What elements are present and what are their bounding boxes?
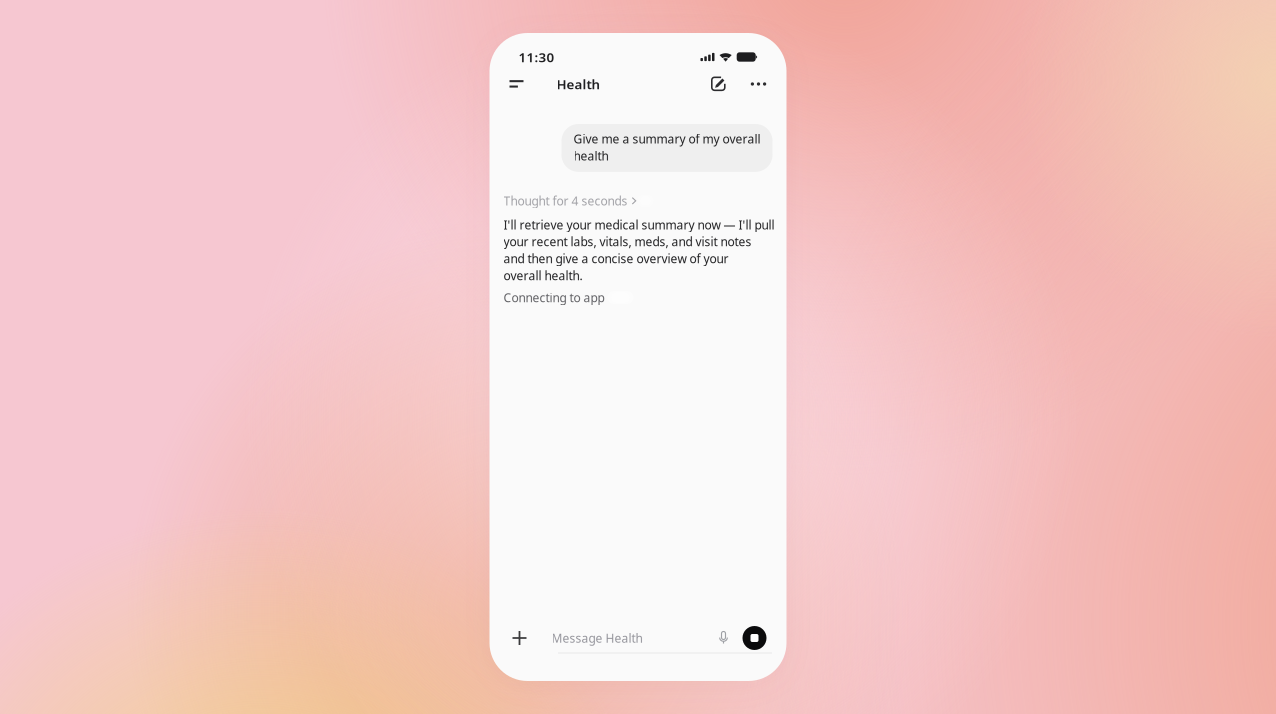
button[interactable]: Add attachment <box>503 622 535 654</box>
staticText: Connecting to app <box>503 289 604 305</box>
button[interactable]: More options <box>742 67 774 101</box>
staticText: I'll retrieve your medical summary now —… <box>503 217 774 283</box>
button[interactable]: Sidebar <box>501 67 531 100</box>
staticText: Message Health <box>551 630 642 646</box>
button[interactable]: New chat <box>702 67 734 101</box>
staticText: Thought for 4 seconds <box>503 193 627 209</box>
staticText: Health <box>556 75 600 93</box>
button[interactable]: Thought for 4 seconds <box>503 193 656 209</box>
staticText: 11:30 <box>518 48 554 66</box>
staticText: Give me a summary of my overall health <box>573 131 760 164</box>
button[interactable]: Message Health <box>535 621 642 655</box>
button[interactable]: Stop generating <box>734 626 766 650</box>
button[interactable]: Dictate <box>712 624 734 651</box>
